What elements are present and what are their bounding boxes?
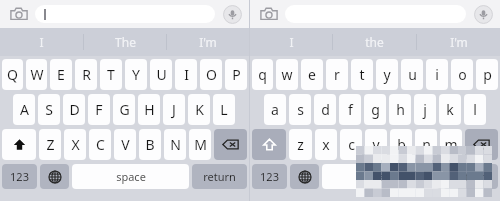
button[interactable]: c [340, 129, 362, 160]
button[interactable]: S [38, 94, 60, 125]
button[interactable]: p [476, 59, 498, 90]
button[interactable]: Shift [252, 129, 286, 160]
button[interactable]: x [315, 129, 337, 160]
button[interactable]: M [189, 129, 211, 160]
button[interactable]: Z [39, 129, 61, 160]
button[interactable]: the [333, 28, 416, 56]
button[interactable]: R [75, 59, 97, 90]
staticText: S [45, 100, 53, 119]
button[interactable]: D [63, 94, 85, 125]
button[interactable]: l [464, 94, 486, 125]
button[interactable]: g [364, 94, 386, 125]
staticText: q [258, 65, 267, 84]
staticText: m [444, 135, 458, 154]
button[interactable]: V [114, 129, 136, 160]
button[interactable]: J [163, 94, 185, 125]
button[interactable]: B [139, 129, 161, 160]
staticText: e [308, 65, 316, 84]
staticText: h [396, 100, 405, 119]
button[interactable]: P [225, 59, 247, 90]
staticText: U [156, 65, 167, 84]
button[interactable]: H [138, 94, 160, 125]
button[interactable]: Q [2, 59, 23, 90]
staticText: X [71, 135, 80, 154]
staticText: E [57, 65, 65, 84]
button[interactable]: F [88, 94, 110, 125]
button[interactable]: W [26, 59, 47, 90]
button[interactable]: k [439, 94, 461, 125]
staticText: J [172, 100, 176, 119]
button[interactable]: e [301, 59, 323, 90]
button[interactable]: h [389, 94, 411, 125]
button[interactable]: N [164, 129, 186, 160]
button[interactable]: Backspace [465, 129, 498, 160]
button[interactable]: G [113, 94, 135, 125]
button[interactable]: w [276, 59, 298, 90]
button[interactable]: d [314, 94, 336, 125]
button[interactable]: v [365, 129, 387, 160]
button[interactable]: m [440, 129, 462, 160]
button[interactable]: Next keyboard [290, 164, 319, 189]
button[interactable]: q [252, 59, 273, 90]
button[interactable]: E [50, 59, 72, 90]
button[interactable]: r [326, 59, 348, 90]
button[interactable]: Camera [9, 4, 29, 24]
button[interactable]: n [415, 129, 437, 160]
staticText: C [96, 135, 105, 154]
button[interactable]: i [426, 59, 448, 90]
button[interactable]: t [351, 59, 373, 90]
button[interactable]: Voice input [222, 4, 242, 24]
button[interactable]: return [443, 164, 498, 189]
staticText: G [119, 100, 130, 119]
button[interactable]: Y [125, 59, 147, 90]
button[interactable]: Backspace [214, 129, 247, 160]
button[interactable]: a [264, 94, 286, 125]
staticText: L [220, 100, 228, 119]
button[interactable]: X [64, 129, 86, 160]
button[interactable]: K [188, 94, 210, 125]
staticText: O [206, 65, 217, 84]
staticText: o [458, 65, 467, 84]
button[interactable]: I'm [167, 28, 249, 56]
staticText: z [297, 135, 304, 154]
button[interactable]: z [289, 129, 312, 160]
button[interactable]: u [401, 59, 423, 90]
button[interactable]: U [150, 59, 172, 90]
button[interactable]: s [289, 94, 311, 125]
button[interactable]: y [376, 59, 398, 90]
button[interactable]: f [339, 94, 361, 125]
staticText: A [20, 100, 29, 119]
button[interactable]: o [451, 59, 473, 90]
button[interactable]: O [200, 59, 222, 90]
button[interactable]: space [322, 164, 440, 189]
staticText: I'm [199, 34, 217, 50]
staticText: F [95, 100, 103, 119]
staticText: n [422, 135, 431, 154]
button[interactable]: Camera [259, 4, 279, 24]
button[interactable]: return [192, 164, 247, 189]
button[interactable]: space [72, 164, 189, 189]
button[interactable]: A [13, 94, 35, 125]
button[interactable]: Shift [2, 129, 36, 160]
button[interactable]: b [390, 129, 412, 160]
button[interactable]: The [84, 28, 166, 56]
staticText: the [365, 34, 384, 50]
button[interactable] [35, 5, 215, 23]
staticText: t [359, 65, 365, 84]
button[interactable]: C [89, 129, 111, 160]
button[interactable]: Voice input [473, 4, 493, 24]
button[interactable]: j [414, 94, 436, 125]
button[interactable]: L [213, 94, 235, 125]
button[interactable]: 123 [252, 164, 287, 189]
button[interactable]: I'm [417, 28, 500, 56]
staticText: space [116, 169, 146, 184]
button[interactable]: 123 [2, 164, 37, 189]
button[interactable]: I [175, 59, 197, 90]
button[interactable]: Next keyboard [40, 164, 69, 189]
staticText: f [348, 100, 353, 119]
staticText: a [271, 100, 279, 119]
button[interactable]: T [100, 59, 122, 90]
